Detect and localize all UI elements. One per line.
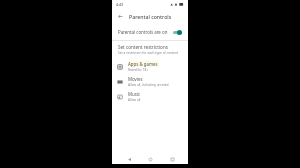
- button[interactable]: Music: [112, 89, 188, 104]
- staticText: Allow all: [128, 98, 141, 102]
- staticText: Parental controls are on: [118, 29, 168, 35]
- staticText: 4:43: [116, 2, 124, 7]
- staticText: Parental controls: [129, 13, 172, 20]
- button[interactable]: Movies: [112, 74, 188, 89]
- staticText: Rated for 18+: [128, 68, 149, 72]
- button[interactable]: Apps & games: [112, 59, 188, 74]
- staticText: Set content restrictions: [118, 44, 168, 50]
- button[interactable]: Back: [124, 154, 134, 164]
- staticText: Allow all, including unrated: [128, 83, 169, 87]
- staticText: Music: [128, 91, 141, 97]
- button[interactable]: Back: [115, 11, 125, 21]
- button[interactable]: Parental controls are on: [112, 23, 188, 40]
- button[interactable]: Home: [145, 154, 155, 164]
- staticText: Movies: [128, 76, 143, 82]
- staticText: Apps & games: [128, 61, 158, 67]
- staticText: Set a restriction for each type of conte…: [118, 51, 179, 55]
- button[interactable]: Recent apps: [167, 154, 177, 164]
